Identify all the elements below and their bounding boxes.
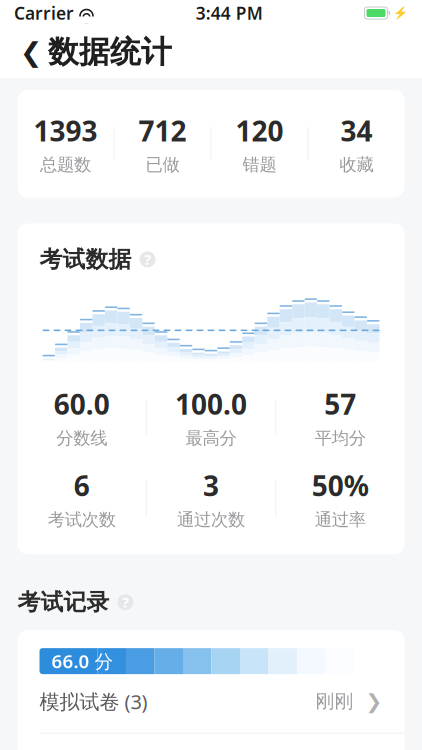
staticText: 最高分 [185,427,236,449]
staticText: 已做 [145,154,179,175]
staticText: 66.0 分 [51,649,113,673]
staticText: 6 [74,467,90,504]
staticText: 考试次数 [48,509,116,530]
button[interactable]: 关于考试数据 [139,251,155,267]
staticText: Carrier [14,1,74,24]
staticText: 34 [340,112,372,149]
staticText: 平均分 [315,427,366,449]
staticText: 数据统计 [48,33,172,71]
staticText: ❯ [365,690,382,713]
button[interactable]: 66.0 分 [17,630,404,734]
staticText: ? [144,250,151,269]
staticText: 712 [138,112,186,149]
staticText: 考试数据 [39,245,131,273]
staticText: 57 [324,385,356,422]
staticText: 60.0 [54,385,110,422]
staticText: ❮ [20,37,42,67]
staticText: 3:44 PM [196,1,263,24]
staticText: 通过率 [315,509,366,530]
staticText: 3 [203,467,219,504]
staticText: 1393 [33,112,97,149]
staticText: 120 [235,112,283,149]
staticText: ⚡ [393,6,408,20]
button[interactable]: ❮ [20,27,172,77]
staticText: 100.0 [175,385,247,422]
staticText: 50% [312,467,369,504]
staticText: 分数线 [56,427,107,449]
staticText: 通过次数 [177,509,245,530]
staticText: 错题 [242,154,276,175]
staticText: 总题数 [40,154,91,175]
staticText: 刚刚 [315,690,353,713]
staticText: 模拟试卷 (3) [39,688,147,715]
staticText: 收藏 [339,154,373,175]
staticText: ? [122,592,129,612]
staticText: 考试记录 [17,588,109,616]
button[interactable]: 关于考试记录 [117,594,133,610]
